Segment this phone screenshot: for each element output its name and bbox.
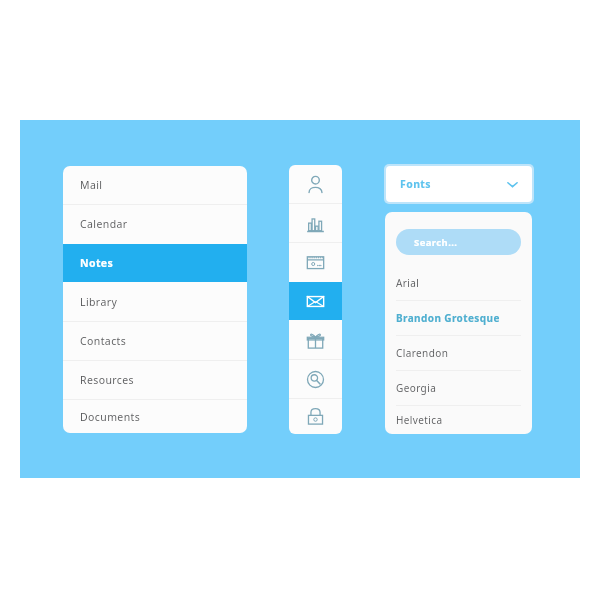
staticText: Calendar: [80, 217, 128, 231]
button[interactable]: Search: [289, 360, 342, 398]
button[interactable]: Contacts: [63, 322, 247, 360]
staticText: Helvetica: [396, 413, 443, 427]
staticText: Arial: [396, 276, 420, 290]
button[interactable]: Notes: [63, 244, 247, 282]
staticText: Clarendon: [396, 346, 449, 360]
staticText: Contacts: [80, 334, 127, 348]
staticText: Notes: [80, 256, 114, 270]
button[interactable]: Security: [289, 399, 342, 434]
button[interactable]: Arial: [385, 266, 532, 300]
staticText: Mail: [80, 178, 103, 192]
button[interactable]: Clarendon: [385, 336, 532, 370]
button[interactable]: Georgia: [385, 371, 532, 405]
button[interactable]: Library: [63, 283, 247, 321]
button[interactable]: Profile: [289, 165, 342, 203]
button[interactable]: Gifts: [289, 321, 342, 359]
staticText: Library: [80, 295, 118, 309]
staticText: Resources: [80, 373, 135, 387]
button[interactable]: Brandon Grotesque: [385, 301, 532, 335]
staticText: Documents: [80, 410, 141, 424]
button[interactable]: Resources: [63, 361, 247, 399]
staticText: Fonts: [400, 177, 431, 191]
button[interactable]: Statistics: [289, 204, 342, 242]
button[interactable]: Fonts: [386, 166, 532, 202]
button[interactable]: Helvetica: [385, 406, 532, 434]
staticText: Georgia: [396, 381, 437, 395]
staticText: Brandon Grotesque: [396, 311, 500, 325]
button[interactable]: Mail: [289, 282, 342, 320]
button[interactable]: Search...: [396, 229, 521, 255]
button[interactable]: Calendar: [63, 205, 247, 243]
staticText: Search...: [414, 236, 458, 249]
button[interactable]: Documents: [63, 400, 247, 433]
button[interactable]: Mail: [63, 166, 247, 204]
button[interactable]: Calendar: [289, 243, 342, 281]
